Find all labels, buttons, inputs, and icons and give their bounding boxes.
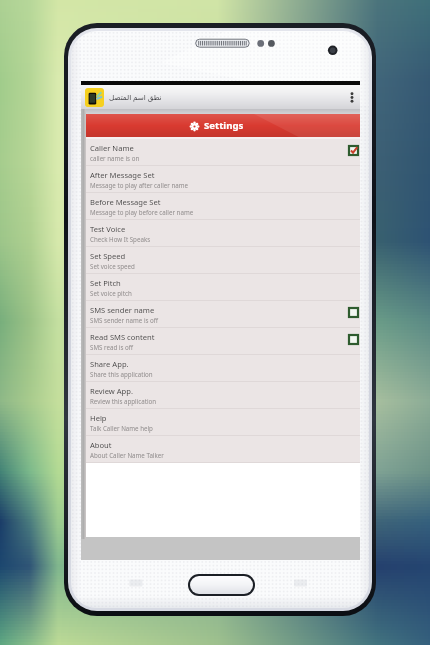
button[interactable]: Share App. bbox=[81, 355, 360, 382]
staticText: Set voice pitch bbox=[90, 289, 132, 297]
staticText: Message to play after caller name bbox=[90, 181, 188, 189]
staticText: Check How It Speaks bbox=[90, 235, 151, 243]
staticText: About bbox=[90, 440, 112, 450]
staticText: Review this application bbox=[90, 397, 157, 405]
staticText: Before Message Set bbox=[90, 197, 161, 207]
button[interactable]: App icon bbox=[85, 88, 104, 107]
staticText: Read SMS content bbox=[90, 332, 155, 342]
button[interactable]: Settings bbox=[81, 114, 360, 137]
staticText: Set Pitch bbox=[90, 278, 121, 288]
staticText: Settings bbox=[204, 119, 244, 132]
button[interactable]: SMS sender name bbox=[81, 301, 360, 328]
staticText: Help bbox=[90, 413, 107, 423]
staticText: Set Speed bbox=[90, 251, 126, 261]
staticText: Test Voice bbox=[90, 224, 126, 234]
staticText: SMS sender name is off bbox=[90, 316, 159, 324]
button[interactable]: More options bbox=[344, 85, 360, 109]
staticText: Caller Name bbox=[90, 143, 134, 153]
staticText: Talk Caller Name help bbox=[90, 424, 153, 432]
button[interactable]: Set Pitch bbox=[81, 274, 360, 301]
button[interactable]: About bbox=[81, 436, 360, 463]
button[interactable]: Before Message Set bbox=[81, 193, 360, 220]
staticText: Share App. bbox=[90, 359, 129, 369]
staticText: Set voice speed bbox=[90, 262, 135, 270]
staticText: SMS sender name bbox=[90, 305, 155, 315]
button[interactable]: Home bbox=[190, 576, 253, 594]
staticText: SMS read is off bbox=[90, 343, 133, 351]
button[interactable]: Caller Name bbox=[81, 139, 360, 166]
staticText: After Message Set bbox=[90, 170, 155, 180]
button[interactable]: Test Voice bbox=[81, 220, 360, 247]
staticText: caller name is on bbox=[90, 154, 140, 162]
button[interactable]: Help bbox=[81, 409, 360, 436]
button[interactable]: Review App. bbox=[81, 382, 360, 409]
staticText: Share this application bbox=[90, 370, 153, 378]
staticText: About Caller Name Talker bbox=[90, 451, 164, 459]
staticText: Message to play before caller name bbox=[90, 208, 194, 216]
button[interactable]: Read SMS content bbox=[81, 328, 360, 355]
staticText: Review App. bbox=[90, 386, 133, 396]
staticText: نطق اسم المتصل bbox=[109, 92, 162, 102]
button[interactable]: After Message Set bbox=[81, 166, 360, 193]
button[interactable]: Set Speed bbox=[81, 247, 360, 274]
